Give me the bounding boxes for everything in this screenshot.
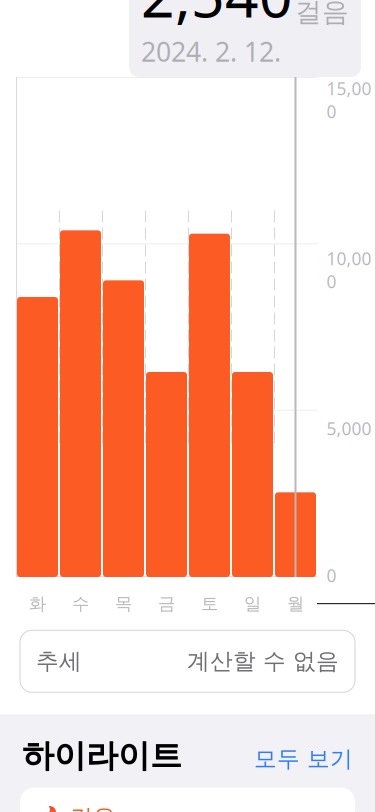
staticText: 월 [287,593,304,614]
staticText: 하이라이트 [22,736,182,776]
button[interactable]: 추세 [0,620,375,714]
button[interactable]: 모두 보기 [254,745,353,773]
staticText: 2,540 [141,0,293,34]
staticText: 15,000 [326,77,371,123]
staticText: 0 [326,564,336,587]
staticText: 추세 [36,647,82,675]
staticText: 토 [201,593,218,614]
staticText: 5,000 [326,417,371,440]
staticText: 10,000 [326,247,371,293]
staticText: 목 [115,593,132,614]
staticText: 🔥 [38,805,65,812]
staticText: 2024. 2. 12. [141,34,281,69]
staticText: 화 [29,593,46,614]
staticText: 모두 보기 [254,745,353,773]
staticText: 수 [72,593,89,614]
staticText: 걸음 [295,0,349,29]
staticText: 걸음 [70,804,116,812]
staticText: 금 [158,593,175,614]
staticText: 일 [244,593,261,614]
staticText: 계산할 수 없음 [187,647,339,675]
